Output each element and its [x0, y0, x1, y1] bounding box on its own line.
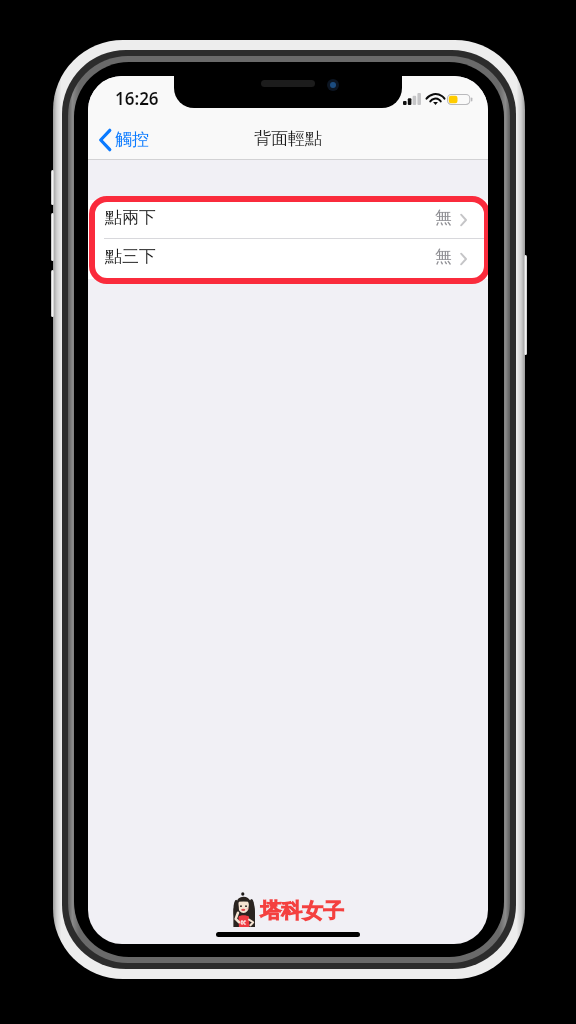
button[interactable]: 點兩下 — [88, 200, 488, 239]
staticText: 背面輕點 — [254, 128, 322, 149]
staticText: 塔科女子 — [260, 898, 344, 924]
staticText: 觸控 — [115, 129, 149, 150]
staticText: 無 — [435, 246, 452, 267]
button[interactable]: 點三下 — [88, 239, 488, 278]
staticText: 點兩下 — [105, 207, 156, 228]
staticText: 無 — [435, 207, 452, 228]
staticText: 16:26 — [115, 87, 159, 110]
button[interactable]: Back to 觸控 — [88, 125, 159, 155]
staticText: 點三下 — [105, 246, 156, 267]
